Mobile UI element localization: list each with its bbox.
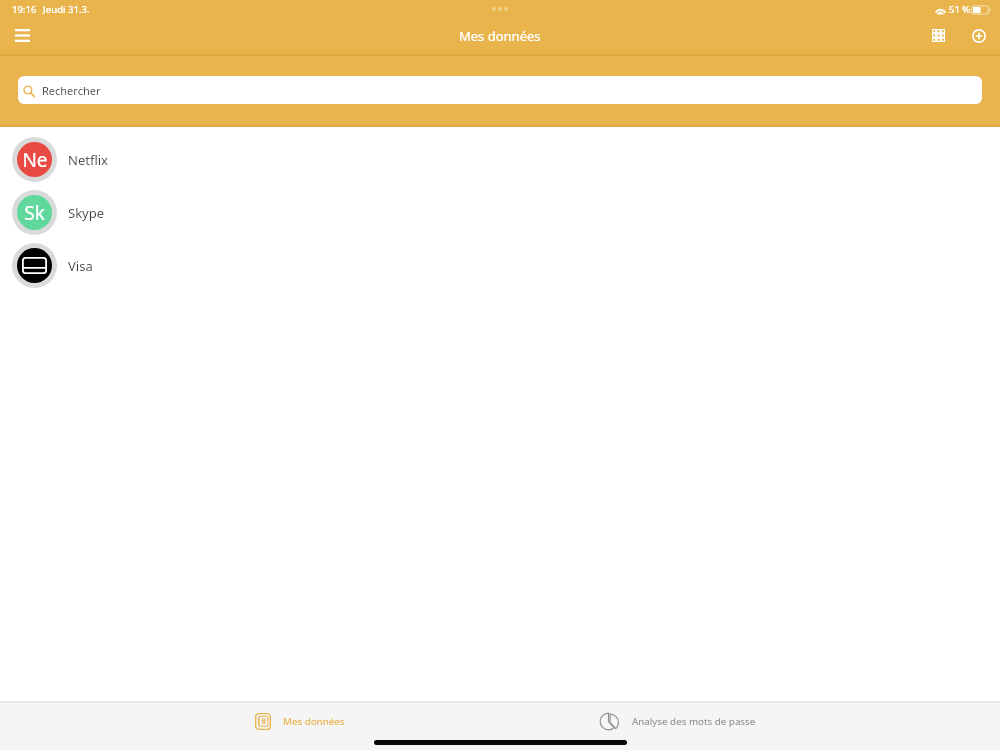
staticText: 19:16 [12,3,37,16]
staticText: Rechercher [42,83,101,98]
button[interactable]: Ne [0,133,1000,186]
staticText: Skype [68,204,105,222]
staticText: 51 % [949,3,971,16]
staticText: Visa [68,257,93,275]
staticText: Mes données [283,715,345,728]
button[interactable]: Add [963,20,994,51]
staticText: Analyse des mots de passe [632,715,756,728]
button[interactable]: Sk [0,186,1000,239]
button[interactable]: Mes données [255,704,345,738]
button[interactable]: Rechercher [18,76,982,104]
staticText: Sk [24,200,45,226]
staticText: Ne [22,147,48,173]
button[interactable]: Analyse des mots de passe [599,704,756,738]
button[interactable]: Grid view [923,20,954,51]
button[interactable]: Menu [7,20,38,51]
button[interactable]: Visa [0,239,1000,292]
staticText: Mes données [459,27,541,45]
staticText: Netflix [68,151,108,169]
staticText: Jeudi 31.3. [43,3,90,16]
